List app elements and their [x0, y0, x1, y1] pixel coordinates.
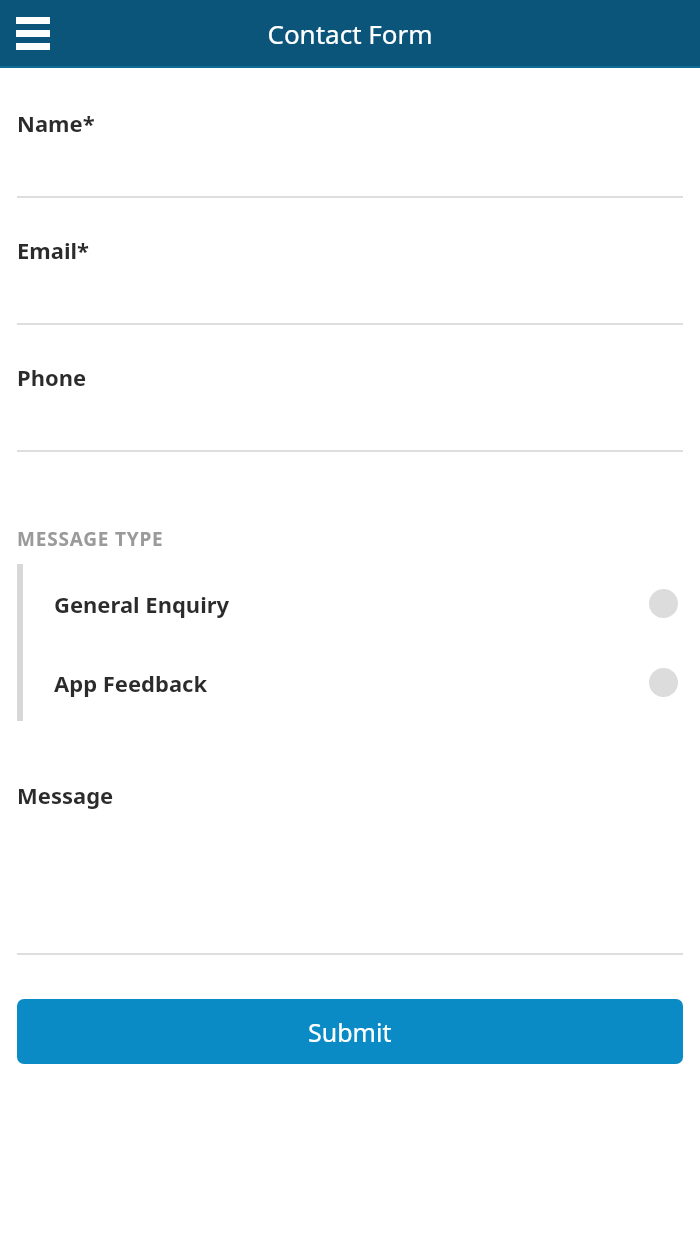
staticText: Contact Form	[267, 16, 433, 51]
button[interactable]: App Feedback	[23, 643, 683, 722]
staticText: Name*	[17, 108, 95, 138]
staticText: General Enquiry	[54, 589, 230, 619]
staticText: Phone	[17, 362, 87, 392]
staticText: Submit	[308, 1015, 392, 1049]
staticText: MESSAGE TYPE	[17, 526, 164, 552]
button[interactable]: Submit	[17, 999, 683, 1064]
staticText: Message	[17, 780, 114, 810]
staticText: App Feedback	[54, 668, 208, 698]
button[interactable]: General Enquiry	[23, 564, 683, 643]
staticText: Email*	[17, 235, 90, 265]
button[interactable]: Open navigation menu	[0, 0, 66, 66]
